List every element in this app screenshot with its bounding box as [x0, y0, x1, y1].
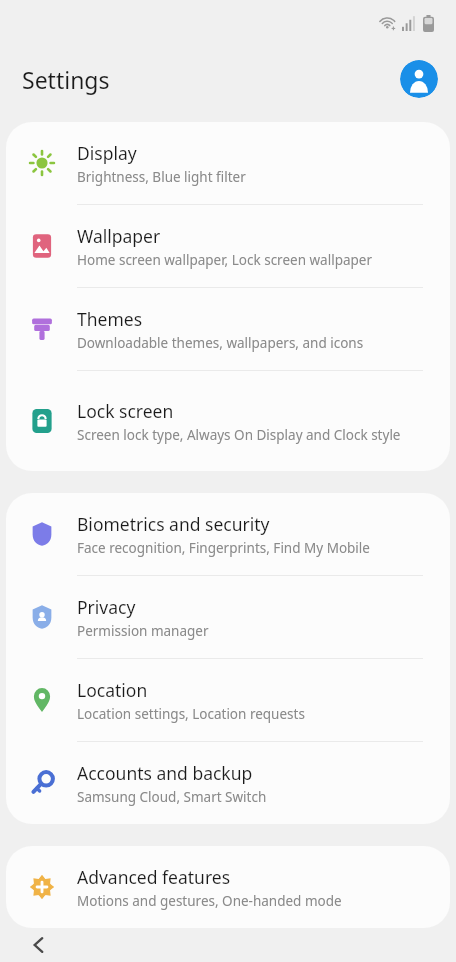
staticText: Biometrics and security	[77, 512, 270, 536]
staticText: Motions and gestures, One-handed mode	[77, 892, 342, 910]
staticText: Samsung Cloud, Smart Switch	[77, 788, 267, 806]
button[interactable]: Wallpaper	[6, 205, 450, 287]
staticText: Display	[77, 141, 137, 165]
staticText: Brightness, Blue light filter	[77, 168, 246, 186]
button[interactable]: Biometrics and security	[6, 493, 450, 575]
staticText: Wallpaper	[77, 224, 161, 248]
staticText: Location	[77, 678, 148, 702]
staticText: Home screen wallpaper, Lock screen wallp…	[77, 251, 373, 269]
staticText: Screen lock type, Always On Display and …	[77, 426, 401, 444]
staticText: Privacy	[77, 595, 136, 619]
button[interactable]: Accounts and backup	[6, 742, 450, 824]
staticText: Settings	[22, 64, 110, 95]
button[interactable]: Back	[22, 928, 56, 962]
staticText: Downloadable themes, wallpapers, and ico…	[77, 334, 364, 352]
button[interactable]: Advanced features	[6, 846, 450, 928]
staticText: Accounts and backup	[77, 761, 253, 785]
staticText: Face recognition, Fingerprints, Find My …	[77, 539, 370, 557]
staticText: Permission manager	[77, 622, 209, 640]
button[interactable]: Lock screen	[6, 371, 450, 471]
button[interactable]: Samsung account profile	[400, 60, 438, 98]
button[interactable]: Display	[6, 122, 450, 204]
button[interactable]: Privacy	[6, 576, 450, 658]
staticText: Lock screen	[77, 399, 174, 423]
button[interactable]: Themes	[6, 288, 450, 370]
staticText: Location settings, Location requests	[77, 705, 305, 723]
staticText: Advanced features	[77, 865, 231, 889]
button[interactable]: Location	[6, 659, 450, 741]
staticText: Themes	[77, 307, 143, 331]
